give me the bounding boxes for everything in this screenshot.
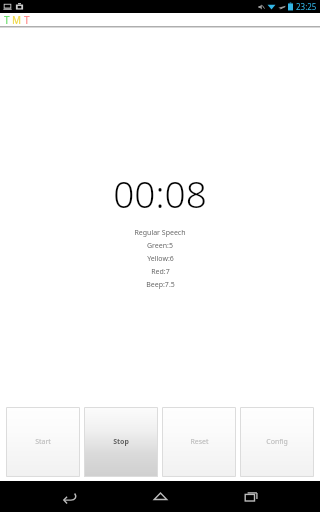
button[interactable]: Stop [84,407,158,477]
staticText: 23:25 [296,1,317,12]
button[interactable]: Start [6,407,80,477]
staticText: Reset [190,437,209,447]
staticText: T [24,13,30,26]
button[interactable]: Back [47,481,91,512]
button[interactable]: Reset [162,407,236,477]
staticText: Stop [113,437,129,447]
staticText: M [12,13,22,26]
staticText: Yellow:6 [147,254,174,264]
staticText: Beep:7.5 [146,280,175,290]
staticText: Start [35,437,51,447]
staticText: Config [266,437,288,447]
button[interactable]: Config [240,407,314,477]
staticText: 00:08 [113,168,207,218]
button[interactable]: Home [138,481,182,512]
staticText: Green:5 [147,241,173,251]
staticText: Red:7 [151,267,170,277]
button[interactable]: Recent apps [229,481,273,512]
staticText: Regular Speech [134,228,186,238]
staticText: T [4,13,10,26]
